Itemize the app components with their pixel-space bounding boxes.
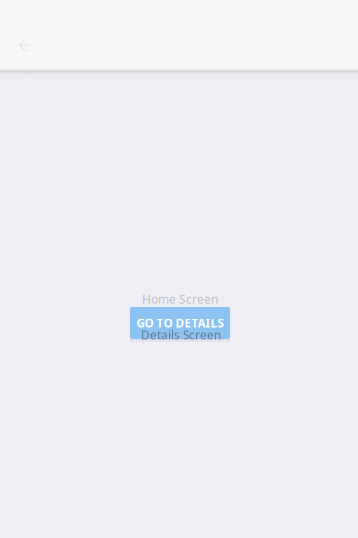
staticText: Details Screen [141,327,221,343]
button[interactable]: GO TO DETAILS [130,307,230,339]
staticText: Home Screen [142,291,218,307]
staticText: GO TO DETAILS [136,315,223,331]
